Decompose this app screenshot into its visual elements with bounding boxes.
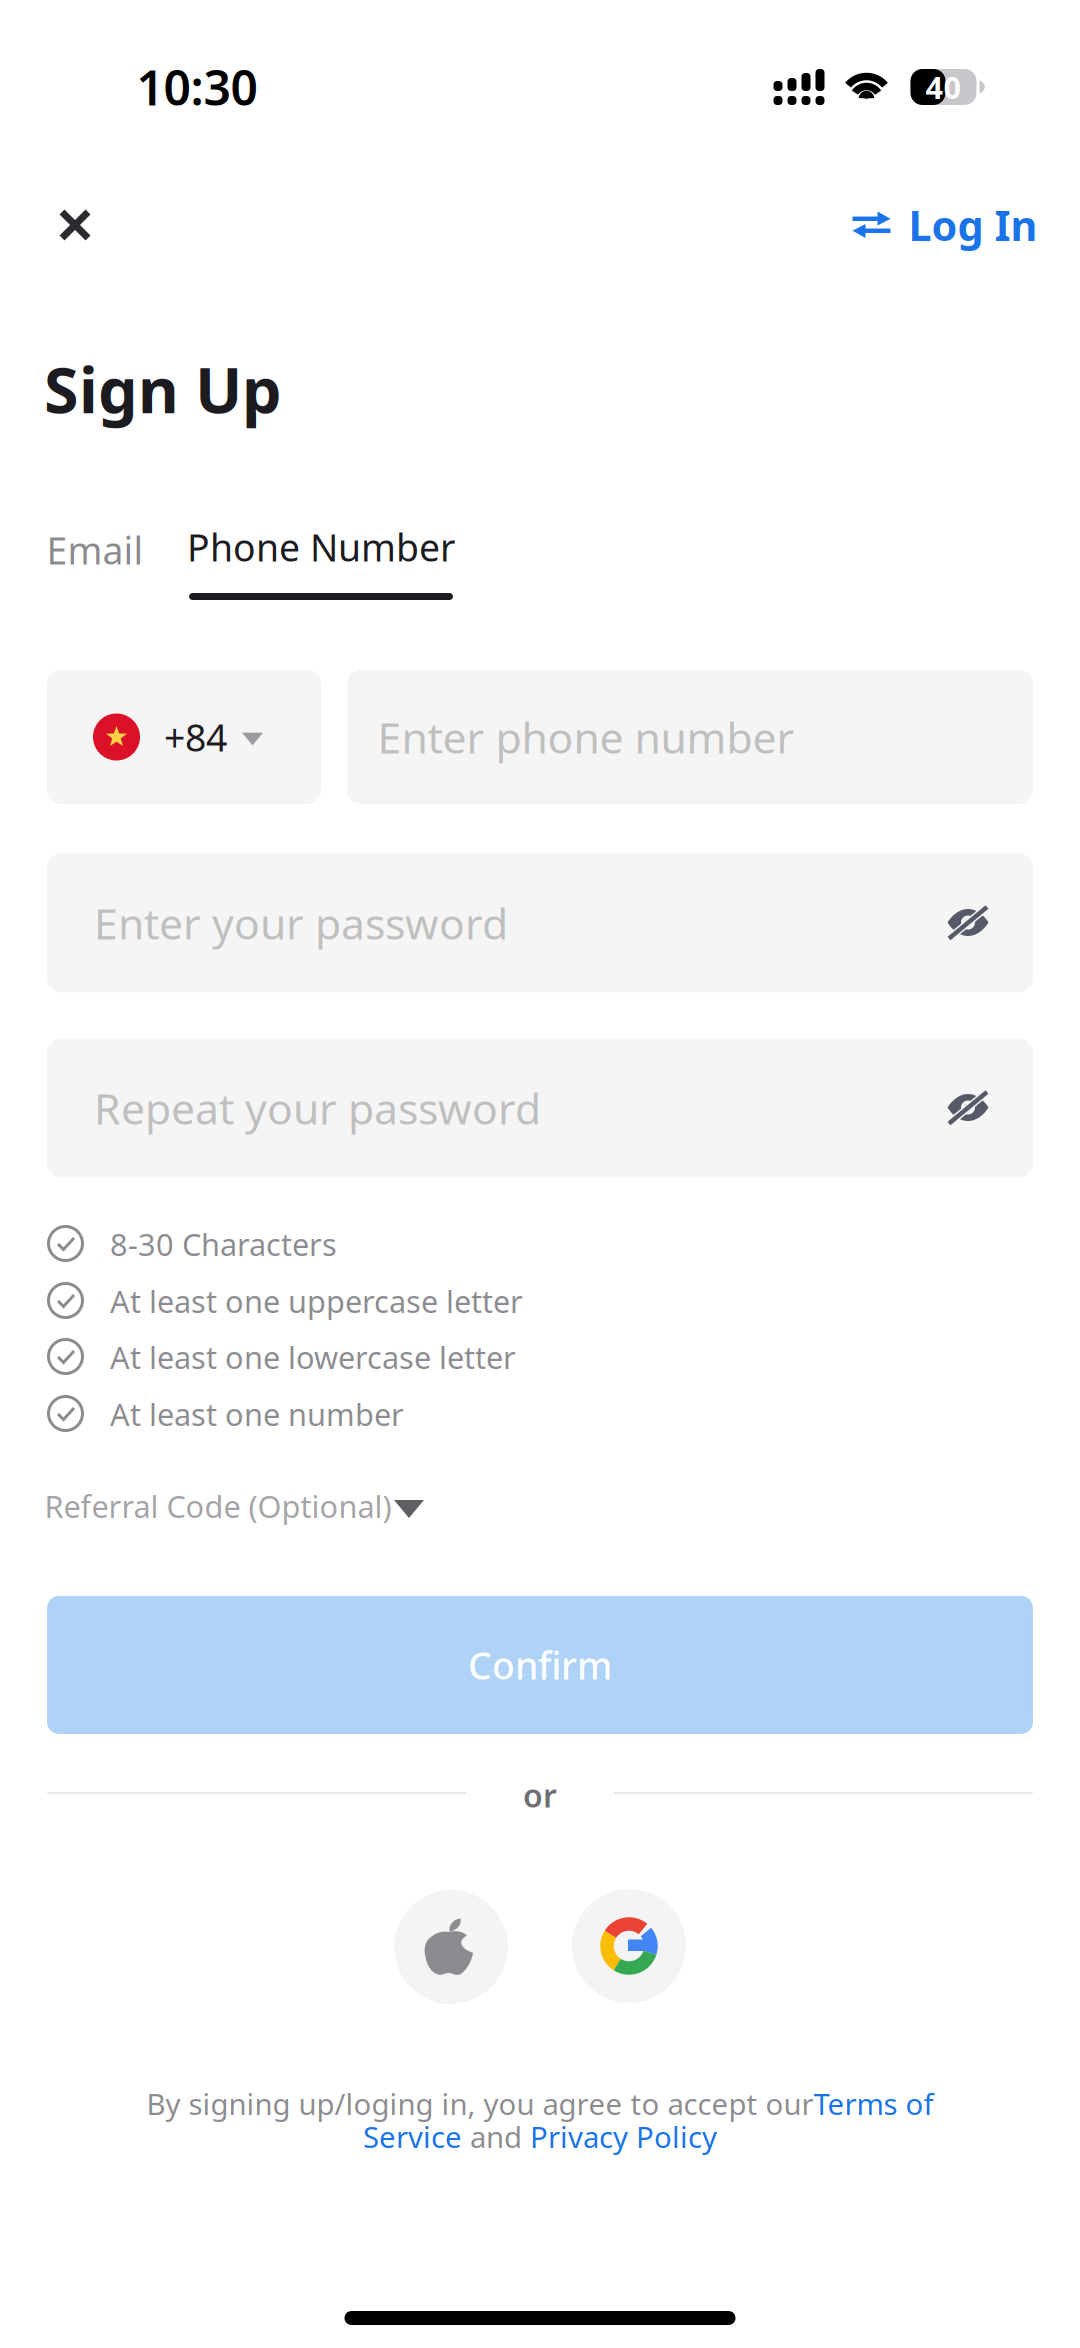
staticText: Sign Up	[44, 347, 282, 431]
button[interactable]: Phone Number	[176, 526, 466, 600]
staticText: Email	[46, 525, 143, 575]
button[interactable]: Referral Code (Optional)	[47, 1476, 467, 1536]
staticText: Enter your password	[94, 895, 508, 951]
button[interactable]: +84	[46, 670, 321, 804]
button[interactable]: Show password	[927, 1067, 1009, 1149]
staticText: Privacy Policy	[530, 2117, 717, 2156]
staticText: Repeat your password	[94, 1080, 541, 1136]
staticText: and	[462, 2117, 530, 2156]
staticText: Confirm	[468, 1640, 612, 1690]
button[interactable]: Confirm	[47, 1596, 1033, 1734]
staticText: +84	[164, 712, 227, 762]
staticText: At least one number	[110, 1394, 404, 1434]
staticText: Terms of	[813, 2084, 933, 2123]
staticText: Phone Number	[187, 522, 455, 572]
staticText: At least one uppercase letter	[110, 1281, 523, 1321]
staticText: Service	[363, 2117, 462, 2156]
staticText: Referral Code (Optional)	[44, 1486, 391, 1526]
staticText: 8-30 Characters	[110, 1224, 337, 1264]
button[interactable]: Email	[35, 519, 155, 581]
staticText: Log In	[908, 198, 1037, 252]
button[interactable]: Close	[35, 185, 115, 265]
staticText: At least one lowercase letter	[110, 1337, 516, 1377]
staticText: Enter phone number	[377, 709, 794, 765]
button[interactable]: Sign in with Google	[572, 1889, 686, 2003]
staticText: or	[523, 1774, 557, 1816]
staticText: 10:30	[136, 55, 257, 119]
button[interactable]: Sign in with Apple	[394, 1890, 508, 2004]
staticText: By signing up/loging in, you agree to ac…	[146, 2084, 813, 2123]
button[interactable]: Log In	[852, 187, 1037, 263]
button[interactable]: Show password	[927, 882, 1009, 964]
staticText: 40	[925, 67, 961, 107]
